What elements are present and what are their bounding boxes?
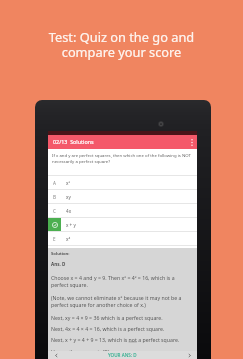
staticText: Hence, the answer is (D). [51, 348, 112, 351]
button[interactable]: C [48, 204, 197, 217]
staticText: 4x [66, 208, 72, 214]
staticText: x + y [66, 222, 76, 228]
staticText: Next, xy = 4 × 9 = 36 which is a perfect… [51, 314, 163, 321]
button[interactable]: x + y [48, 218, 197, 231]
staticText: If x and y are perfect squares, then whi… [52, 152, 195, 164]
staticText: B [53, 194, 56, 200]
button[interactable]: 02/13 Solutions [48, 135, 197, 149]
staticText: Solution: [51, 251, 70, 257]
staticText: Test: Quiz on the go and compare your sc… [12, 28, 231, 61]
staticText: x² [66, 180, 71, 186]
button[interactable]: B [48, 190, 197, 203]
staticText: 02/13 Solutions [53, 138, 94, 145]
button[interactable]: Previous question [48, 351, 64, 359]
staticText: (Note, we cannot eliminate x² because it… [51, 294, 193, 309]
button[interactable]: E [48, 232, 197, 245]
button[interactable]: Next question [181, 351, 197, 359]
button[interactable]: A [48, 176, 197, 189]
staticText: x⁴ [66, 236, 71, 242]
button[interactable]: More options [186, 135, 197, 149]
staticText: Ans. D [51, 261, 66, 267]
staticText: Next, 4x = 4 × 4 = 16, which is a perfec… [51, 325, 165, 332]
staticText: xy [66, 194, 71, 200]
staticText: C [53, 208, 56, 214]
staticText: YOUR ANS: D [108, 352, 137, 358]
staticText: A [53, 180, 56, 186]
staticText: E [53, 236, 56, 242]
staticText: Choose x = 4 and y = 9. Then x² = 4² = 1… [51, 274, 193, 289]
staticText: Next, x + y = 4 + 9 = 13, which is not a… [51, 336, 180, 343]
